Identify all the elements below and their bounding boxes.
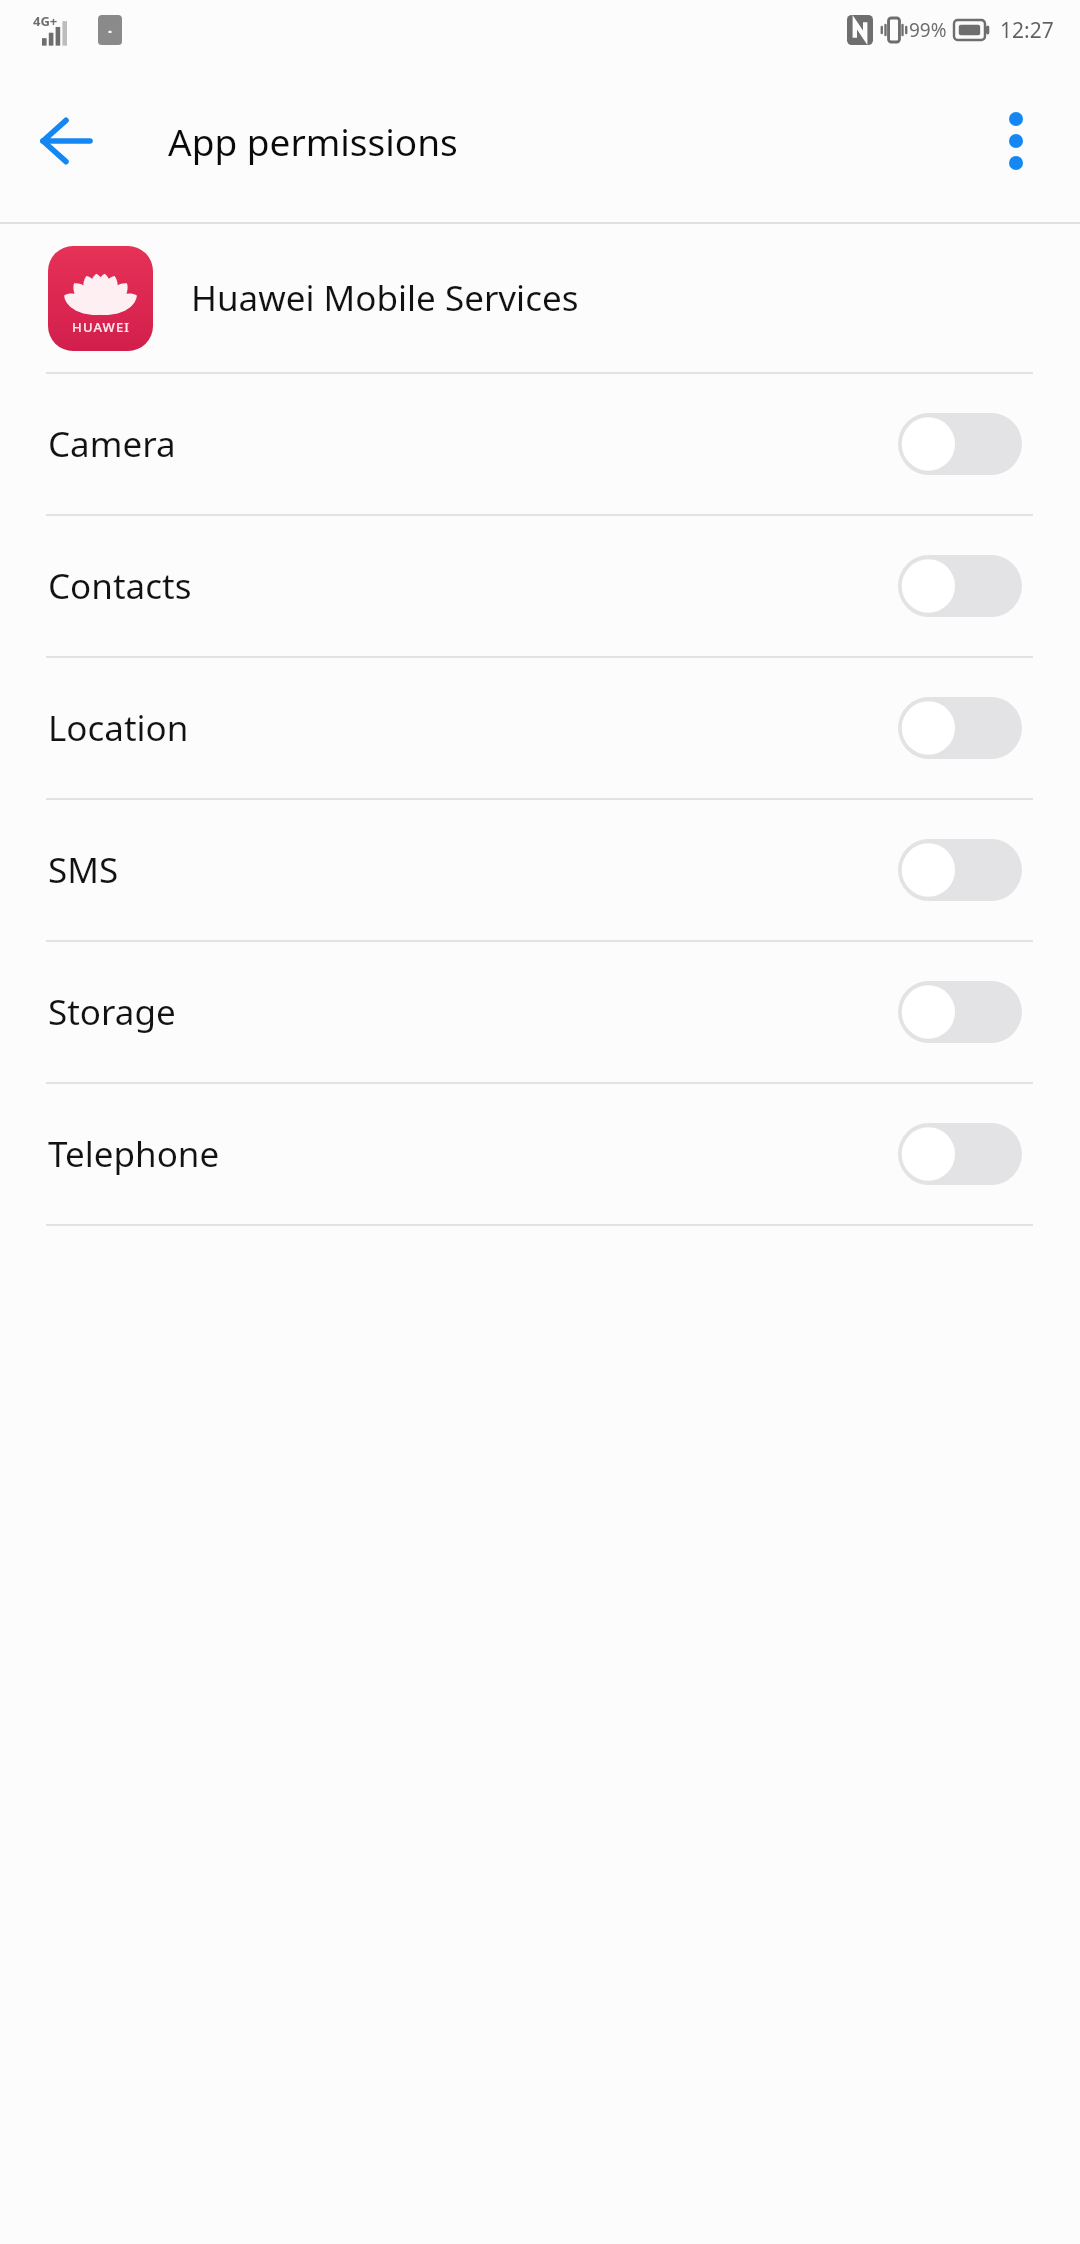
staticText: HUAWEI	[72, 318, 130, 336]
staticText: Location	[48, 704, 189, 752]
staticText: 99%	[909, 17, 947, 43]
button[interactable]: Storage	[0, 942, 1080, 1082]
button[interactable]: Toggle permission	[898, 1123, 1022, 1185]
button[interactable]: Camera	[0, 374, 1080, 514]
staticText: Huawei Mobile Services	[191, 274, 579, 322]
button[interactable]: Location	[0, 658, 1080, 798]
button[interactable]: SMS	[0, 800, 1080, 940]
staticText: Camera	[48, 420, 176, 468]
button[interactable]: Toggle permission	[898, 697, 1022, 759]
button[interactable]: Toggle permission	[898, 839, 1022, 901]
button[interactable]: More options	[976, 101, 1056, 181]
staticText: 12:27	[1000, 16, 1054, 45]
button[interactable]: HUAWEI	[0, 224, 1080, 372]
button[interactable]: Toggle permission	[898, 981, 1022, 1043]
staticText: 4G+	[33, 12, 58, 30]
staticText: Telephone	[48, 1130, 220, 1178]
button[interactable]: Toggle permission	[898, 555, 1022, 617]
button[interactable]: Toggle permission	[898, 413, 1022, 475]
staticText: SMS	[48, 846, 119, 894]
staticText: Storage	[48, 988, 176, 1036]
button[interactable]: Contacts	[0, 516, 1080, 656]
staticText: Contacts	[48, 562, 192, 610]
button[interactable]: Telephone	[0, 1084, 1080, 1224]
staticText: App permissions	[168, 116, 458, 166]
button[interactable]: Back	[26, 102, 104, 180]
